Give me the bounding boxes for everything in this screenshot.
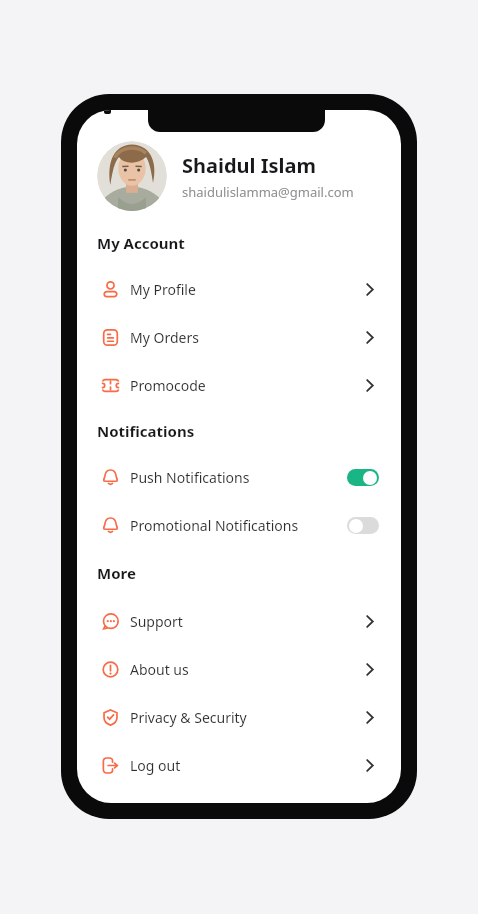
button[interactable]: Promocode	[77, 361, 401, 409]
staticText: My Orders	[130, 328, 199, 347]
button[interactable]: Log out	[77, 741, 401, 789]
staticText: Support	[130, 612, 183, 631]
button[interactable]: About us	[77, 645, 401, 693]
staticText: My Profile	[130, 280, 196, 299]
staticText: More	[97, 563, 136, 583]
staticText: My Account	[97, 233, 185, 253]
staticText: Privacy & Security	[130, 708, 247, 727]
staticText: shaidulislamma@gmail.com	[182, 183, 354, 201]
staticText: Promocode	[130, 376, 206, 395]
button[interactable]: Support	[77, 597, 401, 645]
button[interactable]: Promotional Notifications	[77, 501, 401, 549]
button[interactable]: My Orders	[77, 313, 401, 361]
staticText: About us	[130, 660, 189, 679]
button[interactable]: Push Notifications	[77, 453, 401, 501]
staticText: Push Notifications	[130, 468, 250, 487]
staticText: Notifications	[97, 421, 195, 441]
button[interactable]: Privacy & Security	[77, 693, 401, 741]
button[interactable]: My Profile	[77, 265, 401, 313]
button[interactable]	[347, 517, 379, 534]
staticText: Shaidul Islam	[182, 152, 317, 179]
staticText: Log out	[130, 756, 181, 775]
button[interactable]	[347, 469, 379, 486]
staticText: Promotional Notifications	[130, 516, 299, 535]
